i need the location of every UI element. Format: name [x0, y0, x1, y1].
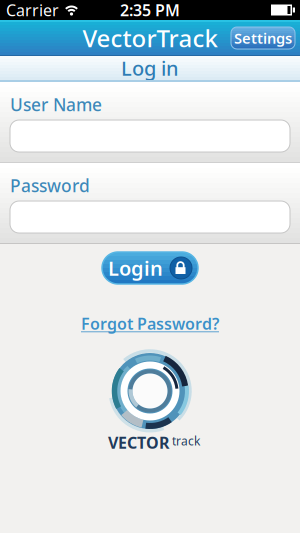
button[interactable]: Login — [102, 252, 198, 284]
button[interactable]: Settings — [231, 27, 295, 49]
staticText: Login — [108, 255, 163, 281]
staticText: VECTOR — [108, 432, 169, 453]
staticText: User Name — [10, 93, 102, 116]
staticText: track — [172, 433, 200, 449]
button[interactable]: User Name text field — [0, 120, 300, 152]
staticText: 2:35 PM — [120, 0, 180, 21]
staticText: Carrier — [6, 0, 59, 21]
staticText: Forgot Password? — [81, 313, 219, 334]
staticText: VectorTrack — [82, 22, 217, 54]
button[interactable]: Password text field — [0, 201, 300, 233]
staticText: Password — [10, 174, 90, 197]
button[interactable]: Forgot Password? — [81, 313, 219, 334]
staticText: Log in — [121, 55, 179, 81]
staticText: Settings — [234, 28, 292, 48]
